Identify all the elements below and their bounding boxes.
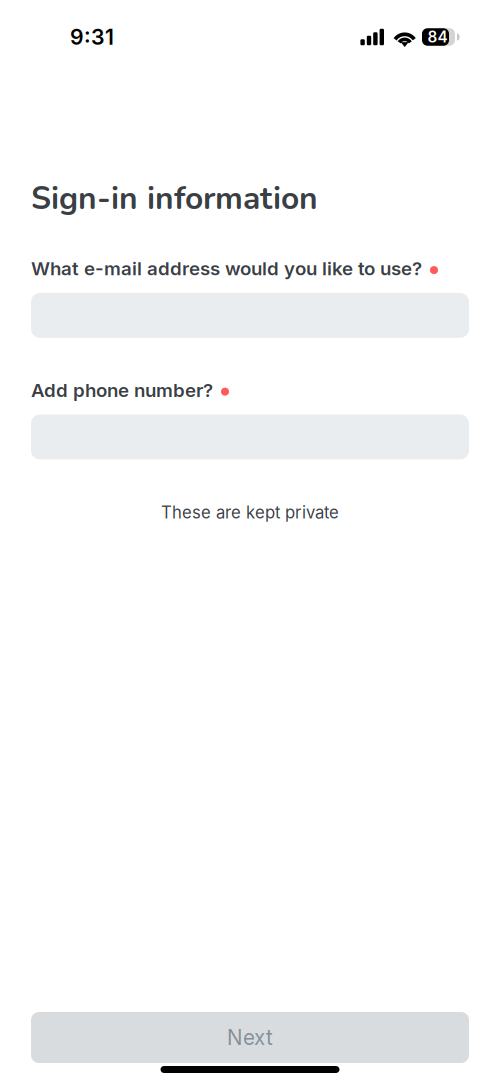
staticText: What e-mail address would you like to us… bbox=[31, 257, 422, 280]
staticText: Add phone number? bbox=[31, 379, 213, 401]
staticText: Sign-in information bbox=[31, 177, 318, 220]
staticText: These are kept private bbox=[161, 502, 339, 523]
staticText: 84 bbox=[427, 28, 447, 46]
staticText: 9:31 bbox=[70, 24, 114, 50]
button[interactable]: Next bbox=[31, 1012, 469, 1063]
staticText: Next bbox=[227, 1025, 273, 1050]
